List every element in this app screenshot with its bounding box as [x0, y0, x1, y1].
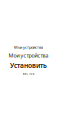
staticText: Мои устройства	[14, 45, 43, 50]
staticText: ABC test	[22, 72, 34, 75]
staticText: Мои устройства	[8, 52, 48, 59]
staticText: Установить	[10, 61, 47, 70]
